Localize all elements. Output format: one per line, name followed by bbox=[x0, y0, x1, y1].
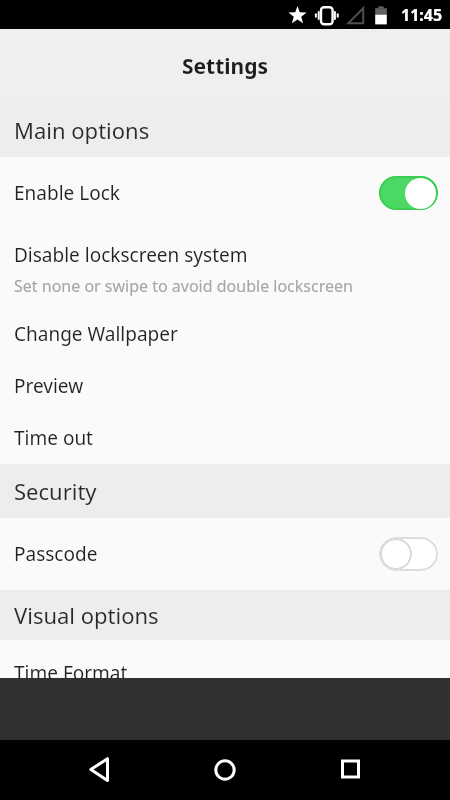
staticText: Passcode bbox=[14, 541, 98, 567]
staticText: Visual options bbox=[14, 600, 159, 630]
button[interactable] bbox=[150, 740, 300, 800]
staticText: Preview bbox=[14, 373, 84, 399]
button[interactable] bbox=[300, 740, 450, 800]
staticText: Enable Lock bbox=[14, 180, 120, 206]
staticText: Disable lockscreen system bbox=[14, 242, 248, 268]
button[interactable]: Disable lockscreen system bbox=[0, 229, 450, 308]
button[interactable] bbox=[0, 740, 150, 800]
staticText: Time out bbox=[14, 425, 93, 451]
staticText: Change Wallpaper bbox=[14, 321, 178, 347]
button[interactable]: Time out bbox=[0, 412, 450, 464]
staticText: Set none or swipe to avoid double locksc… bbox=[14, 275, 353, 297]
button[interactable]: Preview bbox=[0, 360, 450, 412]
button[interactable]: Time Format bbox=[0, 640, 450, 678]
staticText: Security bbox=[14, 476, 97, 506]
staticText: Time Format bbox=[14, 660, 128, 678]
button[interactable]: Enable Lock bbox=[0, 157, 450, 229]
button[interactable]: Passcode bbox=[0, 518, 450, 590]
button[interactable]: Change Wallpaper bbox=[0, 308, 450, 360]
staticText: Main options bbox=[14, 115, 150, 145]
staticText: 11:45 bbox=[401, 4, 443, 26]
staticText: Settings bbox=[182, 52, 269, 81]
